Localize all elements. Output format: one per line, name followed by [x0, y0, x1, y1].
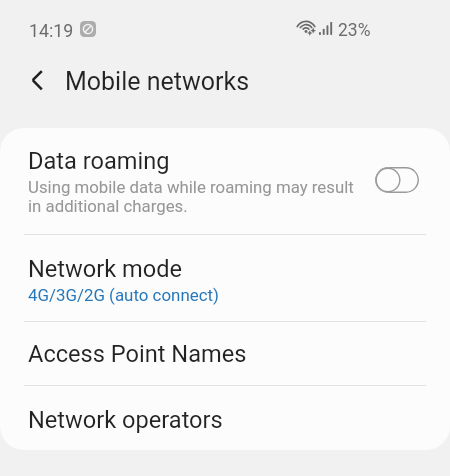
- other: Do not disturb: [80, 21, 96, 37]
- button[interactable]: Navigate up: [19, 62, 55, 98]
- button[interactable]: Data roaming: [0, 128, 450, 234]
- staticText: Network operators: [28, 406, 223, 434]
- button[interactable]: Network mode: [0, 234, 450, 321]
- staticText: Access Point Names: [28, 340, 247, 368]
- button[interactable]: Access Point Names: [0, 321, 450, 385]
- button[interactable]: Data roaming: [375, 167, 419, 193]
- staticText: Network mode: [28, 255, 183, 283]
- staticText: Using mobile data while roaming may resu…: [28, 177, 354, 216]
- staticText: 14:19: [29, 20, 74, 41]
- staticText: Data roaming: [28, 147, 170, 175]
- staticText: Mobile networks: [65, 67, 250, 96]
- staticText: 4G/3G/2G (auto connect): [28, 285, 219, 305]
- staticText: 23%: [338, 20, 371, 41]
- button[interactable]: Network operators: [0, 385, 450, 450]
